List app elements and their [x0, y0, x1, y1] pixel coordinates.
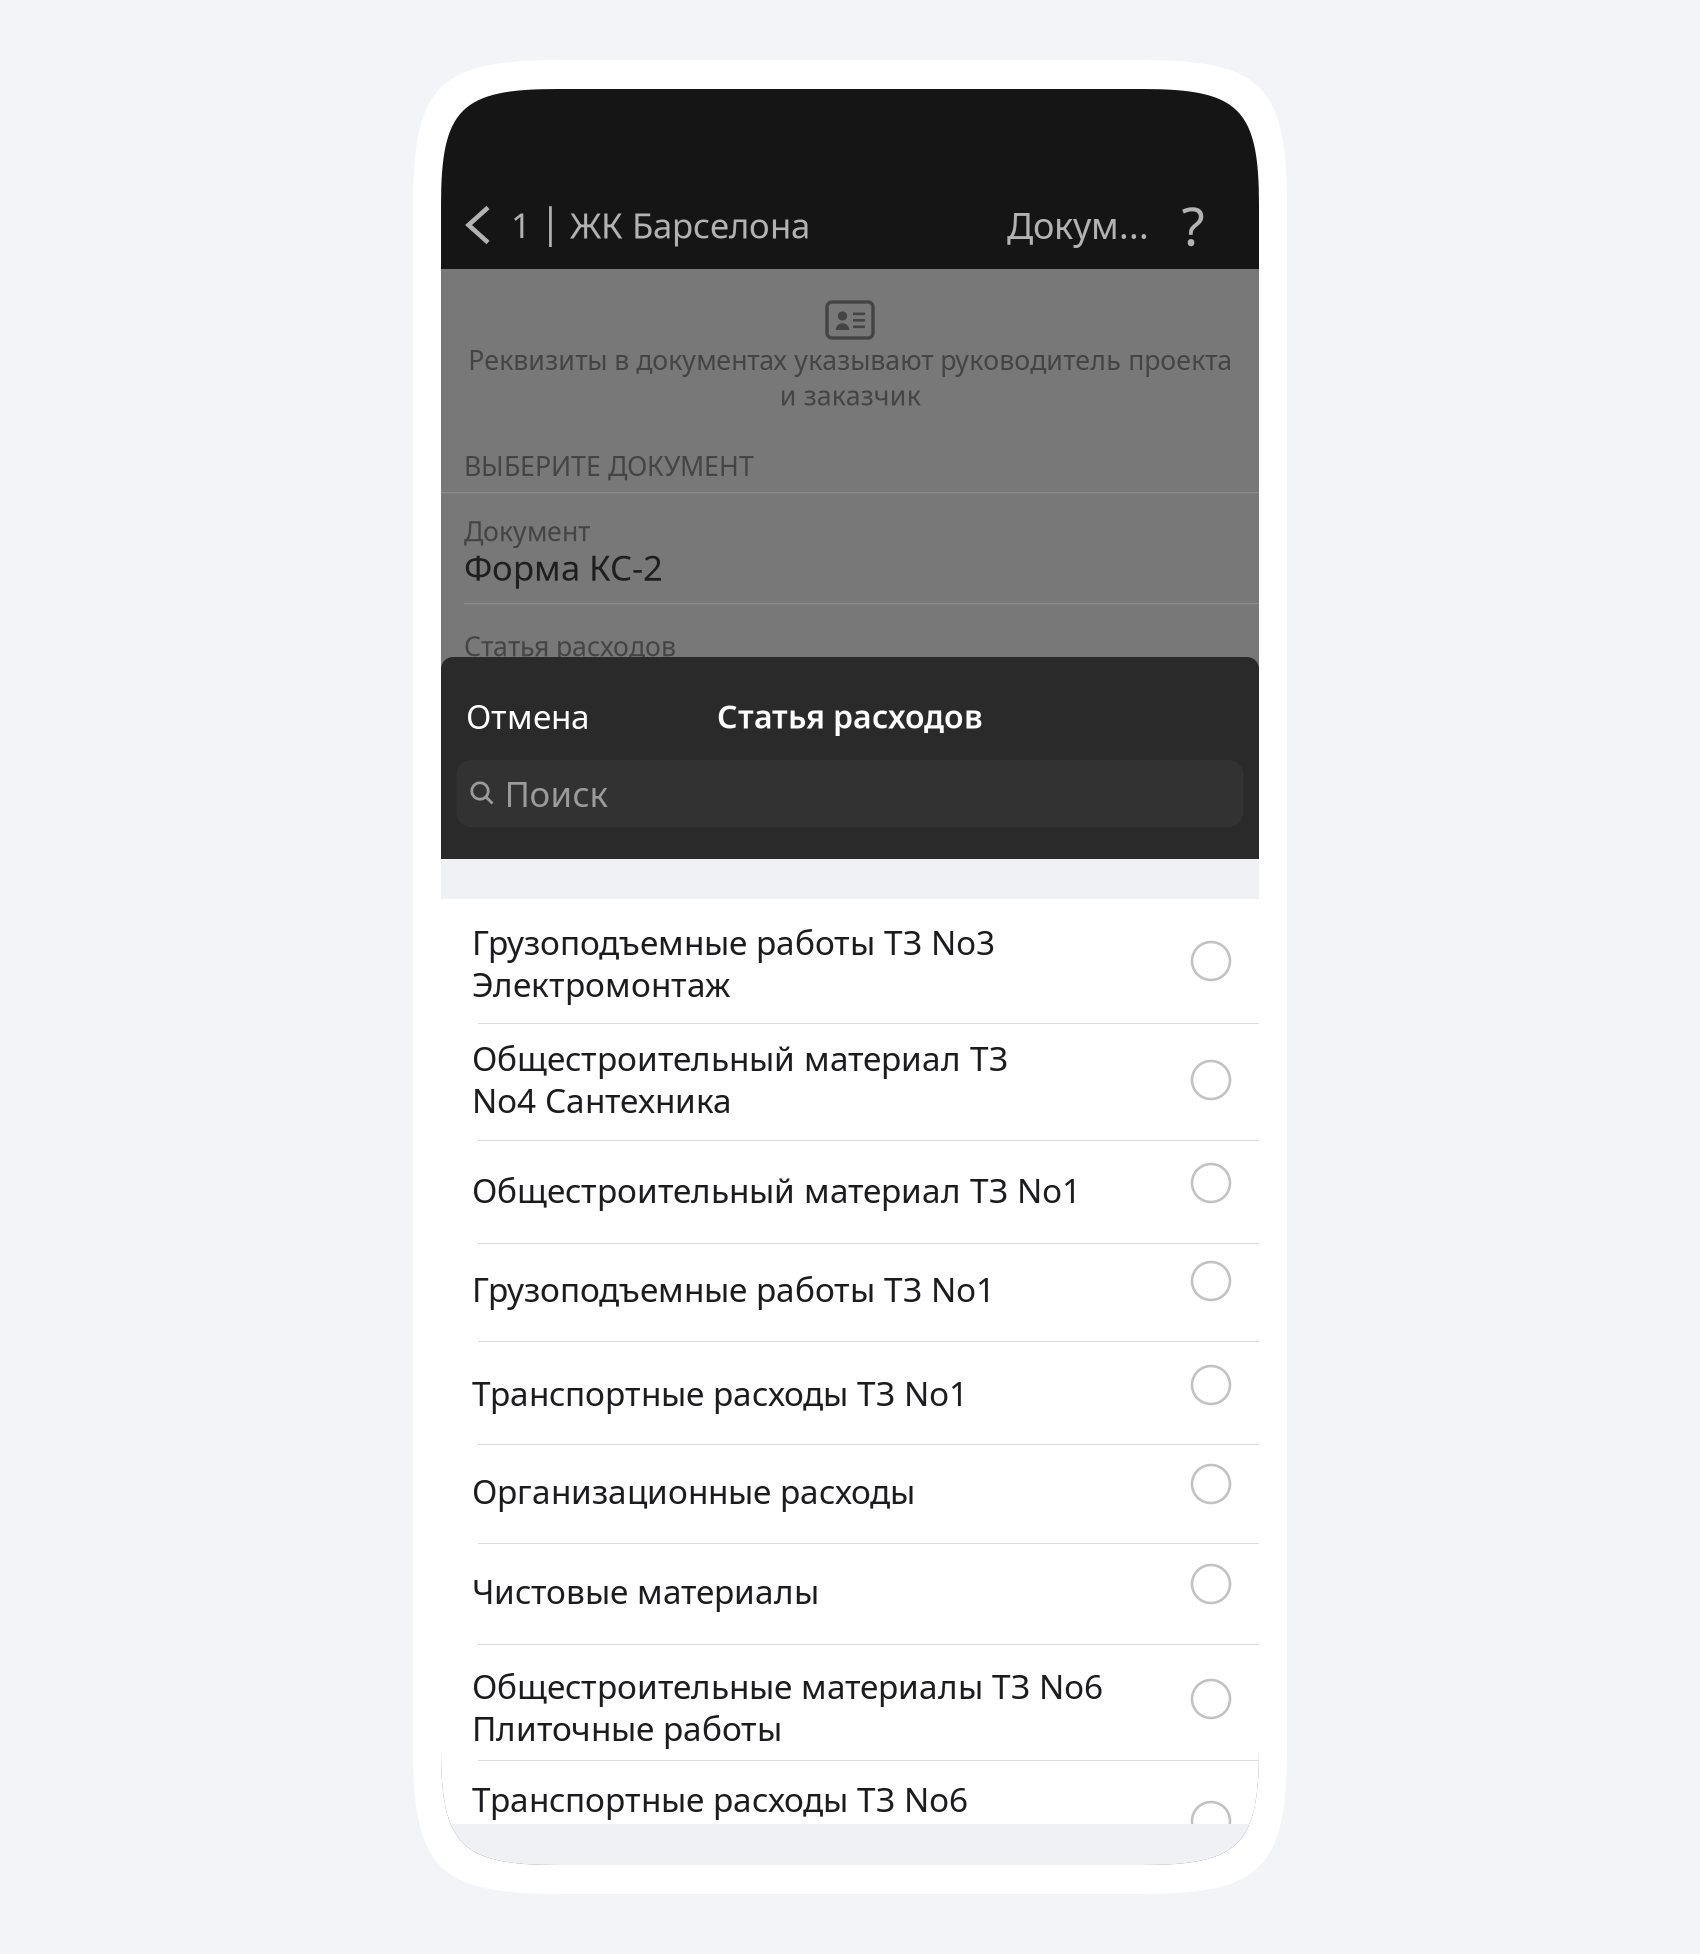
- staticText: Общестроительный материал ТЗ No1: [472, 1168, 1081, 1212]
- button[interactable]: Общестроительный материал ТЗ: [441, 1024, 1259, 1141]
- staticText: Грузоподъемные работы ТЗ No1: [472, 1267, 995, 1311]
- button[interactable]: Транспортные расходы ТЗ No6: [441, 1761, 1259, 1824]
- staticText: Транспортные расходы ТЗ No1: [472, 1371, 968, 1415]
- staticText: Плиточные работы: [472, 1706, 782, 1750]
- staticText: ?: [1181, 190, 1204, 260]
- staticText: Реквизиты в документах указывают руковод…: [468, 342, 1232, 413]
- staticText: Статья расходов: [717, 695, 983, 737]
- button[interactable]: Докум...: [1007, 199, 1149, 251]
- staticText: Докум...: [1007, 201, 1149, 249]
- button[interactable]: Поиск: [456, 760, 1243, 827]
- staticText: Организационные расходы: [472, 1469, 915, 1513]
- button[interactable]: Help: [1149, 199, 1237, 251]
- button[interactable]: Чистовые материалы: [441, 1544, 1259, 1645]
- button[interactable]: Общестроительные материалы ТЗ No6: [441, 1645, 1259, 1761]
- staticText: Транспортные расходы ТЗ No6: [472, 1777, 968, 1821]
- button[interactable]: Транспортные расходы ТЗ No1: [441, 1342, 1259, 1445]
- staticText: No4 Сантехника: [472, 1078, 732, 1122]
- button[interactable]: Грузоподъемные работы ТЗ No3: [441, 899, 1259, 1024]
- staticText: ВЫБЕРИТЕ ДОКУМЕНТ: [464, 448, 754, 483]
- button[interactable]: Общестроительный материал ТЗ No1: [441, 1141, 1259, 1244]
- staticText: Форма КС-2: [464, 544, 663, 590]
- button[interactable]: 1 │ ЖК Барселона: [441, 202, 810, 248]
- staticText: Общестроительные материалы ТЗ No6: [472, 1664, 1103, 1708]
- staticText: Грузоподъемные работы ТЗ No3: [472, 920, 995, 964]
- staticText: Отмена: [466, 694, 590, 738]
- staticText: 1 │ ЖК Барселона: [511, 202, 810, 248]
- staticText: Документ: [464, 513, 590, 549]
- staticText: Электромонтаж: [472, 962, 730, 1006]
- staticText: Чистовые материалы: [472, 1569, 819, 1613]
- button[interactable]: Отмена: [441, 694, 666, 738]
- button[interactable]: Грузоподъемные работы ТЗ No1: [441, 1244, 1259, 1342]
- staticText: Поиск: [504, 770, 607, 816]
- button[interactable]: Организационные расходы: [441, 1445, 1259, 1544]
- staticText: Общестроительный материал ТЗ: [472, 1036, 1008, 1080]
- staticText: Статья расходов: [464, 628, 676, 664]
